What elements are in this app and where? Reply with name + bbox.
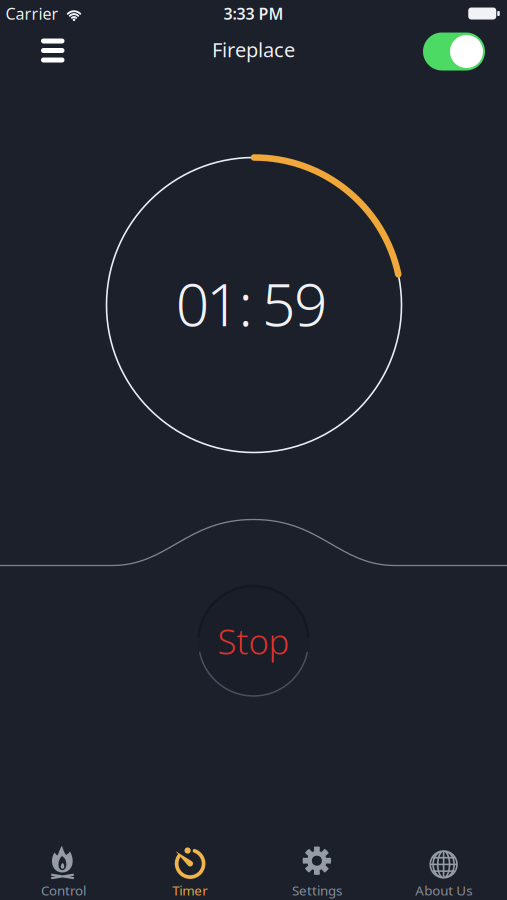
button[interactable]: Timer (127, 834, 254, 900)
staticText: Stop (217, 618, 289, 664)
staticText: Control (41, 881, 86, 899)
button[interactable]: Control (0, 834, 127, 900)
staticText: Timer (172, 881, 208, 899)
button[interactable]: Stop (197, 585, 309, 697)
staticText: 3:33 PM (223, 3, 283, 24)
staticText: About Us (415, 881, 472, 899)
staticText: Fireplace (212, 36, 295, 63)
button[interactable]: About Us (380, 834, 507, 900)
staticText: 01 (176, 264, 239, 342)
button[interactable]: Settings (253, 834, 380, 900)
staticText: Settings (292, 881, 342, 899)
button[interactable]: Power (423, 32, 485, 70)
staticText: Carrier (5, 3, 58, 24)
staticText: 59 (262, 264, 327, 342)
button[interactable]: Menu (39, 38, 67, 63)
staticText: : (238, 264, 252, 342)
